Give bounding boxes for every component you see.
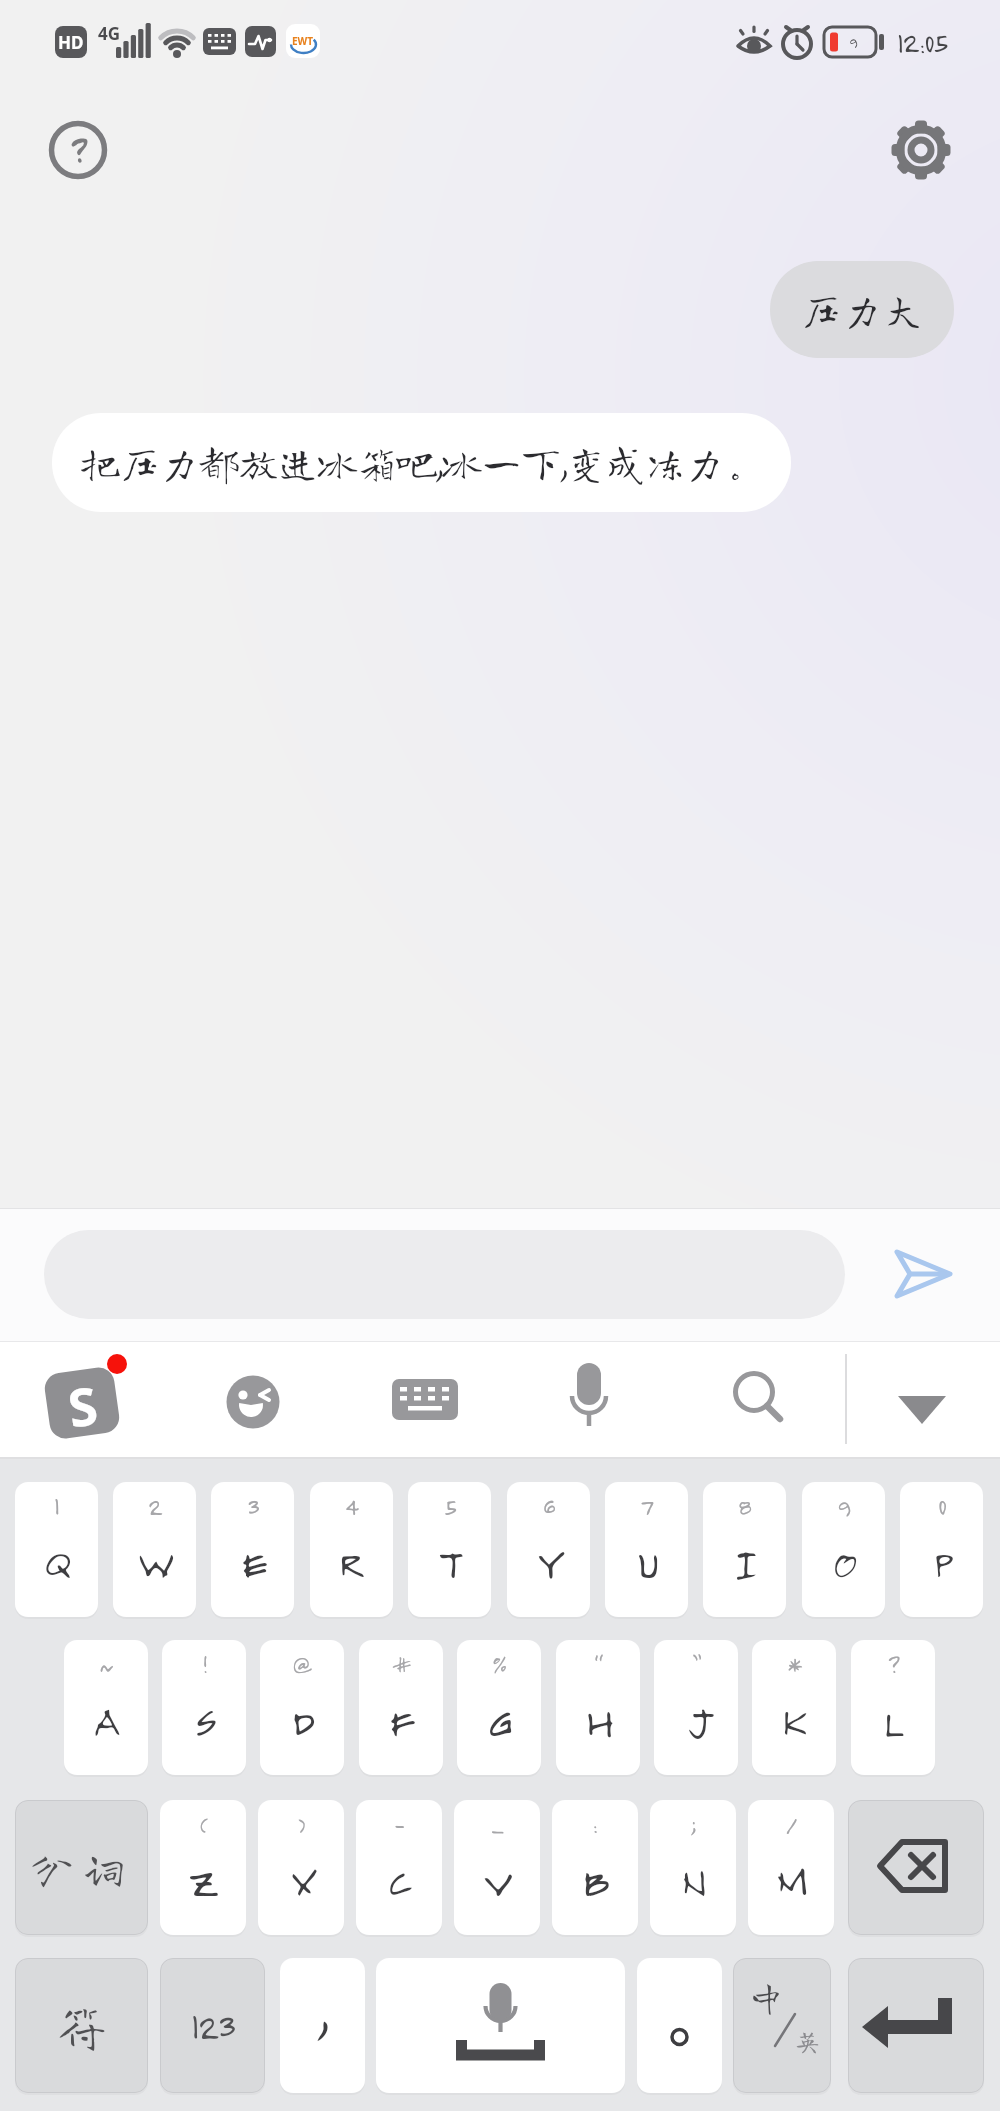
staticText: ~ [99, 1649, 113, 1678]
staticText: - [394, 1809, 404, 1838]
staticText: Y [538, 1534, 560, 1588]
button[interactable]: % [457, 1640, 541, 1775]
button[interactable] [893, 122, 949, 178]
staticText: 2 [148, 1491, 162, 1520]
staticText: * [787, 1649, 802, 1678]
staticText: A [92, 1692, 120, 1746]
staticText: J [686, 1692, 707, 1746]
staticText: 4 [345, 1491, 358, 1520]
button[interactable]: ? [48, 120, 108, 180]
button[interactable]: 9 [802, 1482, 885, 1617]
button[interactable] [565, 1360, 613, 1432]
button[interactable] [376, 1958, 625, 2093]
staticText: 9 [837, 1491, 850, 1520]
button[interactable] [637, 1958, 722, 2093]
staticText: / [785, 1809, 797, 1838]
staticText: G [487, 1692, 512, 1746]
staticText: 6 [543, 1491, 555, 1520]
button[interactable]: 0 [900, 1482, 983, 1617]
button[interactable] [848, 1958, 984, 2093]
staticText: 4G [98, 22, 121, 45]
button[interactable]: ( [160, 1800, 246, 1935]
button[interactable]: 1 [15, 1482, 98, 1617]
staticText: ? [888, 1649, 899, 1678]
button[interactable]: ; [650, 1800, 736, 1935]
staticText: 7 [640, 1491, 653, 1520]
button[interactable] [886, 1242, 958, 1306]
staticText: F [388, 1692, 414, 1746]
staticText: C [387, 1852, 411, 1906]
button[interactable]: 把压力都放进冰箱吧,冰一下,变成冻力。 [52, 413, 791, 512]
staticText: V [483, 1852, 511, 1906]
staticText: T [438, 1534, 462, 1588]
staticText: P [933, 1534, 951, 1588]
button[interactable]: 123 [160, 1958, 265, 2093]
button[interactable]: 中 [733, 1958, 831, 2093]
button[interactable] [848, 1800, 984, 1935]
button[interactable]: : [552, 1800, 638, 1935]
button[interactable]: ~ [64, 1640, 148, 1775]
staticText: 把压力都放进冰箱吧,冰一下,变成冻力。 [80, 442, 764, 483]
button[interactable] [392, 1379, 458, 1420]
staticText: 1 [54, 1491, 59, 1520]
button[interactable]: / [748, 1800, 834, 1935]
staticText: , [317, 1978, 329, 2042]
button[interactable]: , [280, 1958, 365, 2093]
button[interactable]: 8 [703, 1482, 786, 1617]
staticText: 0 [938, 1491, 946, 1520]
staticText: 压力大 [801, 289, 924, 330]
staticText: @ [292, 1649, 312, 1678]
button[interactable]: ? [851, 1640, 935, 1775]
staticText: Z [187, 1852, 219, 1906]
staticText: ” [693, 1649, 700, 1678]
button[interactable]: 3 [211, 1482, 294, 1617]
staticText: 12:05 [897, 25, 947, 59]
staticText: % [492, 1649, 506, 1678]
button[interactable]: _ [454, 1800, 540, 1935]
button[interactable]: 符 [15, 1958, 148, 2093]
button[interactable]: ! [162, 1640, 246, 1775]
staticText: 符 [57, 2001, 107, 2051]
staticText: _ [491, 1809, 504, 1838]
staticText: 分词 [30, 1846, 134, 1890]
button[interactable] [890, 1386, 956, 1434]
button[interactable]: @ [260, 1640, 344, 1775]
staticText: HD [58, 31, 84, 54]
button[interactable]: ” [654, 1640, 738, 1775]
staticText: “ [594, 1649, 603, 1678]
staticText: ( [199, 1809, 207, 1838]
staticText: M [775, 1852, 807, 1906]
button[interactable]: 4 [310, 1482, 393, 1617]
staticText: U [636, 1534, 657, 1588]
staticText: 123 [191, 2005, 235, 2047]
button[interactable]: 7 [605, 1482, 688, 1617]
staticText: Q [43, 1534, 70, 1588]
staticText: I [734, 1534, 756, 1588]
button[interactable]: 2 [113, 1482, 196, 1617]
button[interactable]: 6 [507, 1482, 590, 1617]
staticText: H [585, 1692, 612, 1746]
staticText: EWT [292, 34, 314, 48]
button[interactable]: 压力大 [770, 261, 954, 358]
button[interactable]: # [359, 1640, 443, 1775]
staticText: 9 [849, 33, 857, 51]
button[interactable]: - [356, 1800, 442, 1935]
staticText: ; [690, 1809, 696, 1838]
button[interactable]: S [45, 1366, 121, 1440]
button[interactable] [725, 1368, 789, 1430]
button[interactable]: 分词 [15, 1800, 148, 1935]
button[interactable]: * [752, 1640, 836, 1775]
staticText: O [832, 1534, 855, 1588]
button[interactable] [225, 1374, 281, 1430]
staticText: 3 [247, 1491, 259, 1520]
staticText: 中 [747, 1978, 786, 2016]
staticText: R [339, 1534, 364, 1588]
button[interactable]: 5 [408, 1482, 491, 1617]
staticText: D [292, 1692, 312, 1746]
button[interactable]: ) [258, 1800, 344, 1935]
staticText: ! [202, 1649, 207, 1678]
staticText: W [138, 1534, 172, 1588]
button[interactable]: “ [556, 1640, 640, 1775]
staticText: 英 [794, 2027, 821, 2054]
